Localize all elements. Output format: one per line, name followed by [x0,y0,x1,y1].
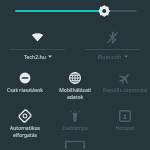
button[interactable]: Hotspot [100,106,150,139]
staticText: Mobilhálózati adatok [52,87,98,100]
button[interactable]: Do not disturb [0,68,50,101]
staticText: Tech2.hu [24,53,46,60]
button[interactable]: Mobile data [50,68,100,101]
staticText: Automatikus elforgatás [2,125,48,138]
staticText: Hotspot [102,125,148,132]
button[interactable]: Auto rotate [0,106,50,139]
staticText: Repülős üzemmód [102,87,148,94]
staticText: Zseblámpa [52,125,98,132]
button[interactable] [0,0,150,22]
staticText: Bluetooth [97,53,122,60]
button[interactable]: Airplane mode [100,68,150,101]
button[interactable]: Tech2.hu [0,26,75,62]
staticText: Csak riasztások [2,87,48,94]
button[interactable]: Bluetooth [75,26,150,62]
button[interactable]: Flashlight [50,106,100,139]
button[interactable]: Collapse quick settings [0,139,150,150]
